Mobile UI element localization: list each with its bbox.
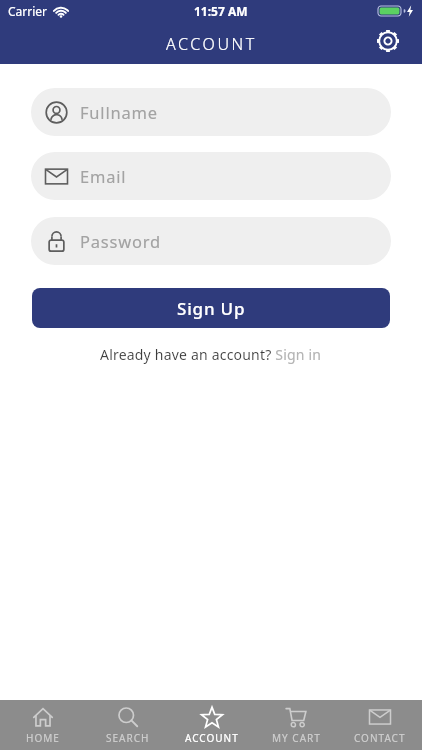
staticText: Fullname <box>80 101 158 123</box>
staticText: Sign Up <box>177 297 246 320</box>
button[interactable]: Email <box>31 152 391 200</box>
staticText: HOME <box>26 731 60 745</box>
staticText: CONTACT <box>354 731 406 745</box>
button[interactable]: Already have an account? Sign in <box>0 345 422 364</box>
staticText: 11:57 AM <box>194 3 248 19</box>
staticText: ACCOUNT <box>185 731 239 745</box>
button[interactable]: CONTACT <box>338 700 422 750</box>
staticText: Already have an account? Sign in <box>100 345 322 364</box>
staticText: Carrier <box>8 3 48 19</box>
button[interactable]: ACCOUNT <box>170 700 254 750</box>
staticText: Password <box>80 230 162 252</box>
staticText: MY CART <box>272 731 321 745</box>
staticText: Email <box>80 165 127 187</box>
button[interactable]: Sign Up <box>32 288 390 328</box>
button[interactable]: Password <box>31 217 391 265</box>
button[interactable]: HOME <box>0 700 85 750</box>
button[interactable]: MY CART <box>254 700 338 750</box>
button[interactable]: Fullname <box>31 88 391 136</box>
button[interactable] <box>375 28 401 54</box>
staticText: ACCOUNT <box>166 33 257 55</box>
staticText: SEARCH <box>106 731 150 745</box>
button[interactable]: SEARCH <box>85 700 170 750</box>
